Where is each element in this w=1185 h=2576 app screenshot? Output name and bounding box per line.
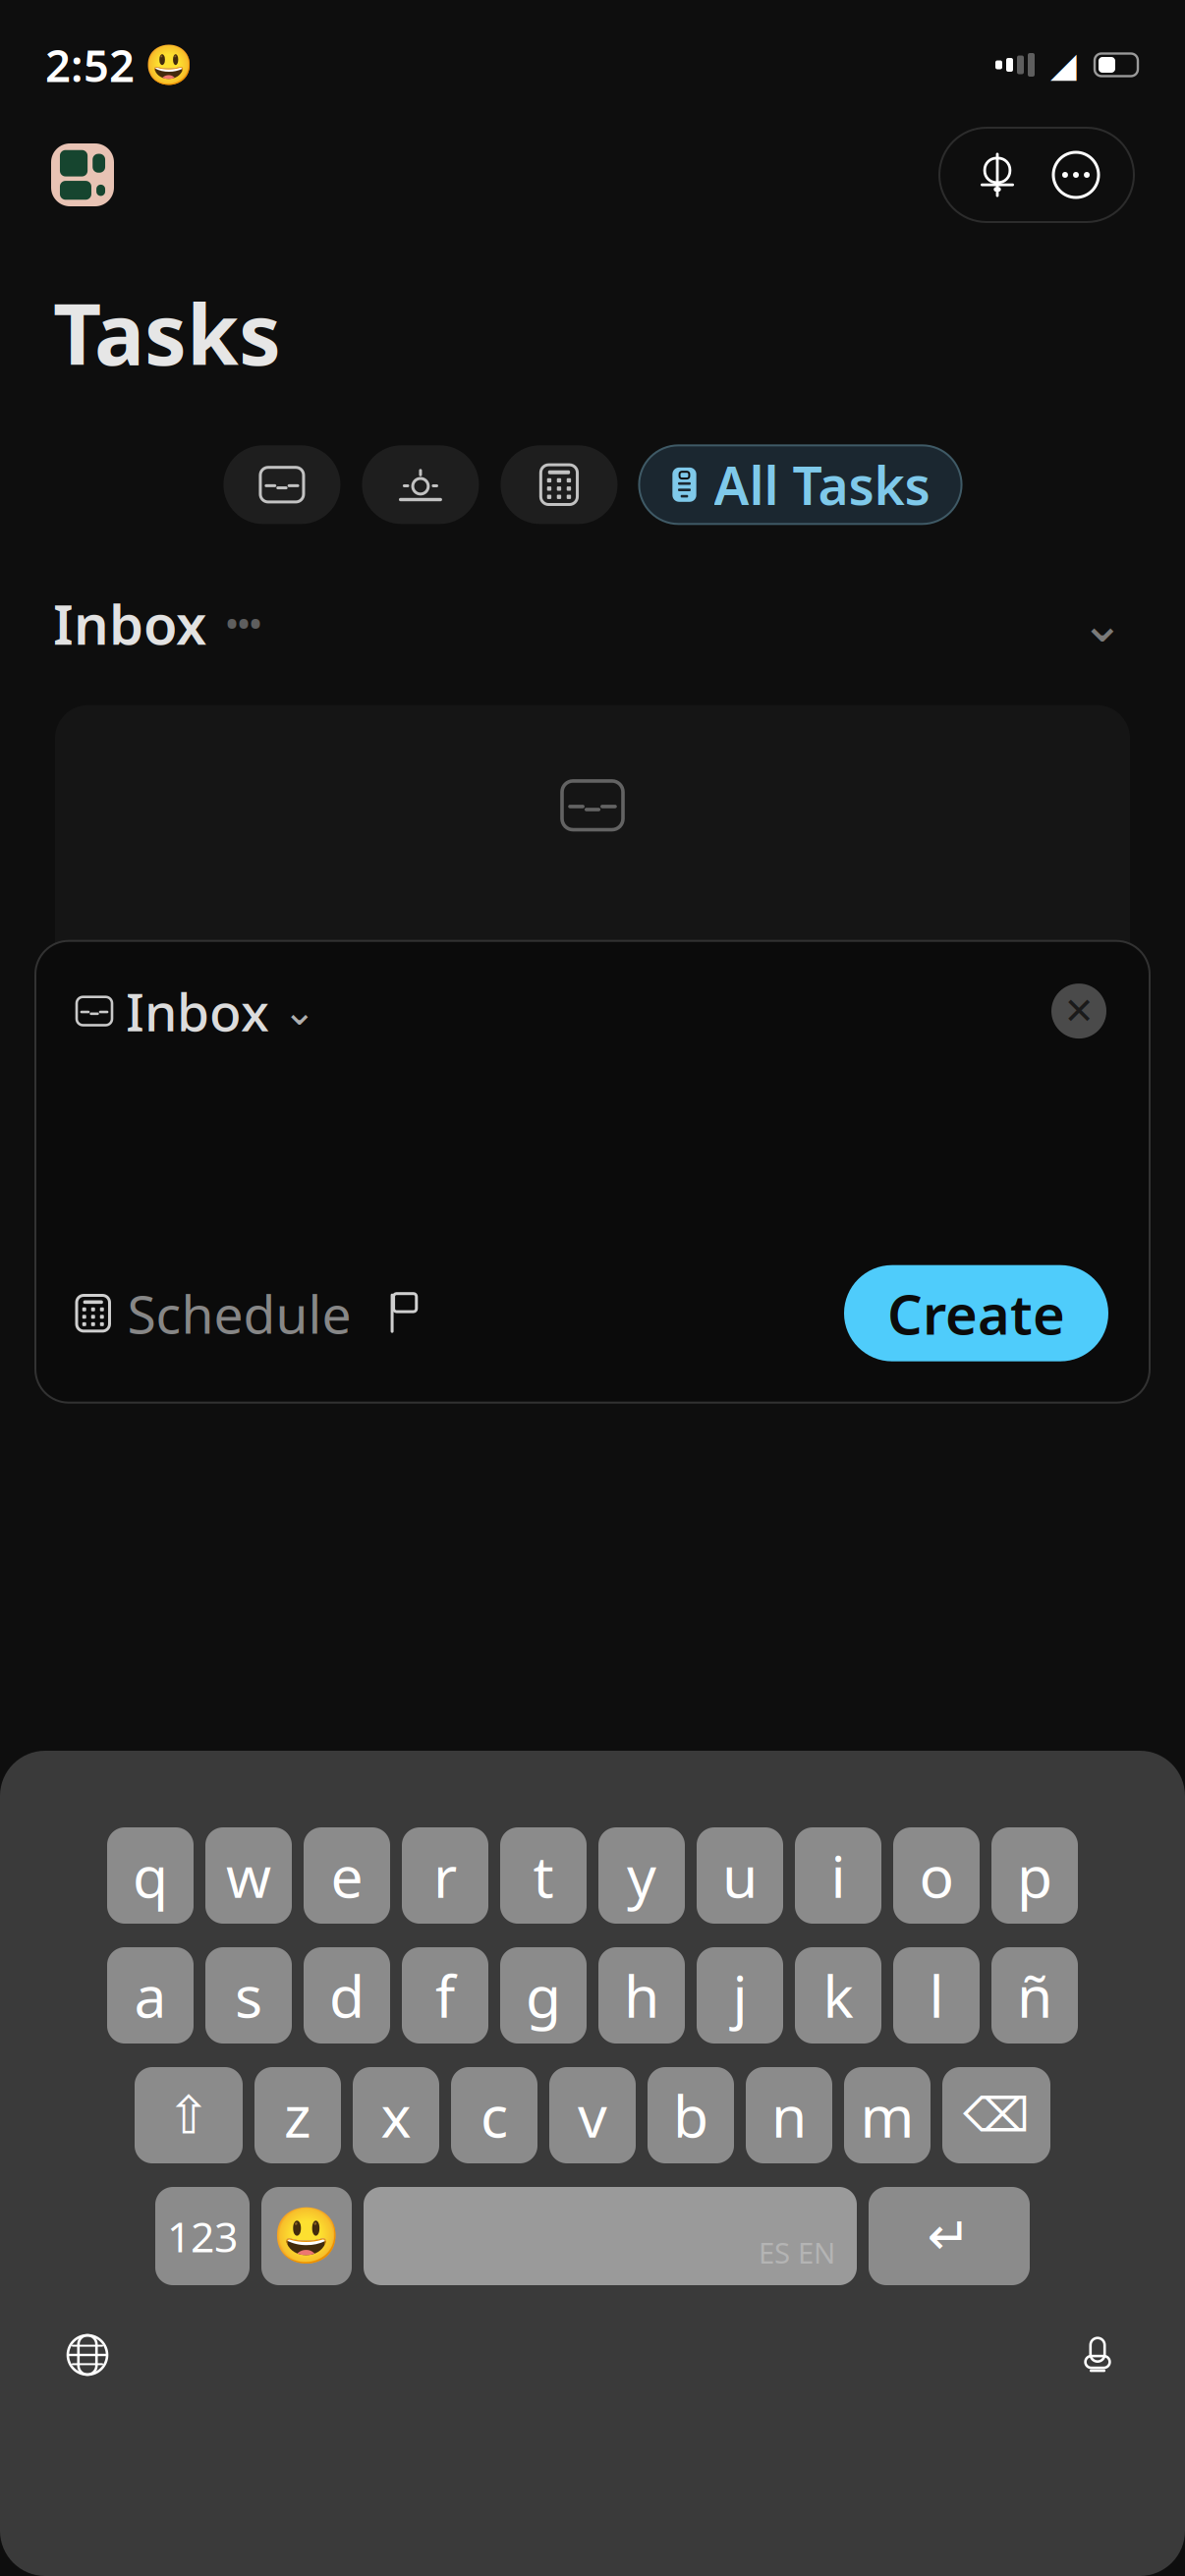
button[interactable]: c (451, 2067, 537, 2163)
button[interactable]: s (205, 1947, 292, 2044)
button[interactable]: h (598, 1947, 685, 2044)
button[interactable]: x (353, 2067, 439, 2163)
button[interactable]: v (549, 2067, 636, 2163)
staticText: ES EN (759, 2233, 835, 2271)
button[interactable]: o (893, 1827, 980, 1924)
button[interactable]: Calendar filter (501, 445, 617, 524)
button[interactable]: Next keyboard (53, 2321, 122, 2389)
staticText: l (929, 1957, 944, 2034)
button[interactable]: Space (364, 2187, 857, 2285)
staticText: Schedule (127, 1278, 351, 1348)
staticText: d (329, 1957, 365, 2034)
button[interactable]: Flag (351, 1294, 417, 1333)
staticText: Inbox (53, 587, 206, 660)
staticText: c (480, 2077, 508, 2153)
staticText: 2:52 (45, 35, 135, 94)
staticText: e (331, 1837, 363, 1914)
button[interactable]: 😃 (261, 2187, 352, 2285)
staticText: m (860, 2077, 914, 2153)
button[interactable]: ⌫ (942, 2067, 1050, 2163)
staticText: j (733, 1957, 747, 2034)
staticText: ⌄ (283, 989, 316, 1033)
button[interactable]: r (402, 1827, 488, 1924)
staticText: k (823, 1957, 853, 2034)
staticText: 😃 (144, 42, 194, 87)
staticText: p (1017, 1837, 1052, 1914)
button[interactable]: Inbox options (206, 597, 281, 650)
button[interactable]: y (598, 1827, 685, 1924)
staticText: ↵ (927, 2206, 971, 2266)
staticText: i (831, 1837, 846, 1914)
button[interactable]: Schedule (77, 1278, 351, 1348)
button[interactable]: z (254, 2067, 341, 2163)
staticText: h (624, 1957, 659, 2034)
staticText: b (673, 2077, 708, 2153)
button[interactable]: m (844, 2067, 931, 2163)
staticText: z (284, 2077, 311, 2153)
button[interactable]: i (795, 1827, 881, 1924)
staticText: s (235, 1957, 262, 2034)
staticText: ⌄ (1080, 594, 1125, 653)
staticText: ◢ (1050, 45, 1077, 84)
staticText: u (722, 1837, 758, 1914)
staticText: ••• (226, 603, 261, 644)
button[interactable]: Inbox filter (223, 445, 340, 524)
button[interactable]: j (697, 1947, 783, 2044)
button[interactable]: 123 (155, 2187, 250, 2285)
button[interactable]: t (500, 1827, 587, 1924)
button[interactable]: Today filter (362, 445, 479, 524)
button[interactable]: Collapse section (1073, 596, 1132, 651)
staticText: Tasks (53, 277, 281, 388)
staticText: All Tasks (714, 450, 930, 519)
button[interactable]: Notifications muted (975, 152, 1020, 197)
button[interactable]: More options (1053, 152, 1099, 197)
staticText: a (134, 1957, 167, 2034)
button[interactable]: Close (1049, 982, 1108, 1041)
button[interactable]: All Tasks (639, 445, 961, 524)
staticText: y (627, 1837, 656, 1914)
staticText: ñ (1017, 1957, 1052, 2034)
staticText: x (381, 2077, 411, 2153)
button[interactable]: ⇧ (135, 2067, 243, 2163)
button[interactable]: ↵ (869, 2187, 1030, 2285)
button[interactable]: b (648, 2067, 734, 2163)
button[interactable]: n (746, 2067, 832, 2163)
button[interactable]: Inbox (77, 976, 316, 1046)
staticText: r (433, 1837, 457, 1914)
button[interactable]: g (500, 1947, 587, 2044)
button[interactable]: Workspace (51, 143, 114, 206)
staticText: q (133, 1837, 168, 1914)
staticText: v (578, 2077, 607, 2153)
staticText: g (526, 1957, 561, 2034)
button[interactable]: Dictate (1063, 2321, 1132, 2389)
staticText: o (919, 1837, 954, 1914)
staticText: Create (887, 1277, 1065, 1350)
button[interactable]: u (697, 1827, 783, 1924)
staticText: ⌫ (963, 2089, 1030, 2142)
staticText: ✕ (1064, 990, 1094, 1032)
button[interactable]: w (205, 1827, 292, 1924)
button[interactable]: d (304, 1947, 390, 2044)
button[interactable]: ñ (991, 1947, 1078, 2044)
staticText: w (226, 1837, 271, 1914)
staticText: Inbox (126, 976, 269, 1046)
staticText: n (771, 2077, 807, 2153)
staticText: t (533, 1837, 554, 1914)
button[interactable]: e (304, 1827, 390, 1924)
button[interactable]: Create (844, 1265, 1108, 1361)
staticText: 123 (167, 2208, 238, 2264)
staticText: ⇧ (167, 2085, 211, 2145)
staticText: 😃 (272, 2205, 341, 2268)
button[interactable]: p (991, 1827, 1078, 1924)
button[interactable]: a (107, 1947, 194, 2044)
button[interactable]: q (107, 1827, 194, 1924)
button[interactable]: k (795, 1947, 881, 2044)
button[interactable]: l (893, 1947, 980, 2044)
staticText: f (435, 1957, 455, 2034)
button[interactable]: f (402, 1947, 488, 2044)
